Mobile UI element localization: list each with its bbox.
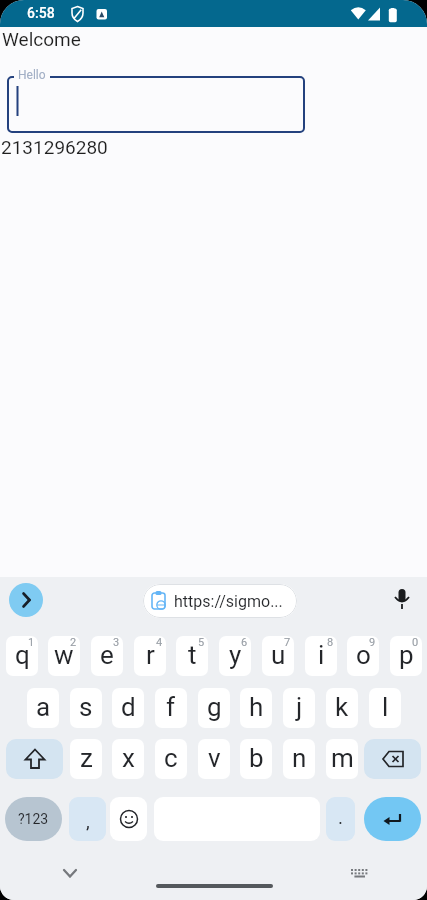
button[interactable]: j <box>283 688 315 728</box>
button[interactable]: k <box>326 688 358 728</box>
button[interactable]: f <box>155 688 187 728</box>
staticText: y <box>229 640 242 670</box>
button[interactable]: a <box>27 688 59 728</box>
staticText: o <box>356 640 371 670</box>
staticText: . <box>338 806 344 828</box>
staticText: 6 <box>241 636 248 649</box>
button[interactable]: m <box>326 739 358 779</box>
staticText: 8 <box>327 636 334 649</box>
button[interactable]: s <box>70 688 102 728</box>
button[interactable] <box>344 859 374 883</box>
staticText: 3 <box>113 636 120 649</box>
button[interactable]: y <box>219 636 251 676</box>
staticText: r <box>146 640 155 670</box>
button[interactable]: l <box>369 688 401 728</box>
staticText: c <box>164 743 178 773</box>
staticText: p <box>399 640 414 670</box>
staticText: n <box>292 743 307 773</box>
button[interactable] <box>56 859 84 883</box>
staticText: u <box>271 640 286 670</box>
button[interactable]: p <box>390 636 422 676</box>
button[interactable] <box>364 797 421 841</box>
button[interactable] <box>7 76 305 133</box>
button[interactable] <box>110 797 147 841</box>
button[interactable]: h <box>240 688 272 728</box>
staticText: e <box>100 640 114 670</box>
staticText: 4 <box>156 636 163 649</box>
staticText: x <box>122 743 135 773</box>
staticText: Welcome <box>2 28 81 50</box>
staticText: t <box>188 640 197 670</box>
button[interactable]: q <box>6 636 38 676</box>
button[interactable] <box>9 583 43 617</box>
staticText: 0 <box>412 636 419 649</box>
staticText: h <box>249 692 264 722</box>
staticText: j <box>296 692 303 722</box>
staticText: z <box>80 743 93 773</box>
staticText: 6:58 <box>27 5 55 21</box>
staticText: 9 <box>369 636 376 649</box>
staticText: b <box>249 743 264 773</box>
button[interactable]: x <box>112 739 144 779</box>
button[interactable]: , <box>69 797 106 841</box>
staticText: ?123 <box>18 811 49 827</box>
button[interactable]: n <box>283 739 315 779</box>
button[interactable]: i <box>305 636 337 676</box>
button[interactable]: o <box>347 636 379 676</box>
staticText: v <box>208 743 221 773</box>
staticText: 1 <box>28 636 35 649</box>
staticText: d <box>121 692 136 722</box>
staticText: 2131296280 <box>1 136 108 158</box>
staticText: f <box>166 692 176 722</box>
staticText: g <box>207 692 222 722</box>
staticText: Hello <box>18 68 46 82</box>
button[interactable] <box>364 739 421 779</box>
staticText: https://sigmo... <box>174 592 283 611</box>
button[interactable] <box>388 585 416 617</box>
button[interactable]: u <box>262 636 294 676</box>
staticText: 2 <box>70 636 77 649</box>
button[interactable]: e <box>91 636 123 676</box>
button[interactable]: ?123 <box>5 797 62 841</box>
button[interactable]: r <box>134 636 166 676</box>
button[interactable]: z <box>70 739 102 779</box>
staticText: s <box>79 692 93 722</box>
button[interactable]: b <box>240 739 272 779</box>
button[interactable]: v <box>198 739 230 779</box>
staticText: i <box>318 640 325 670</box>
button[interactable]: w <box>48 636 80 676</box>
staticText: , <box>86 810 90 832</box>
staticText: l <box>382 692 389 722</box>
staticText: m <box>331 743 354 773</box>
button[interactable]: t <box>176 636 208 676</box>
button[interactable]: d <box>112 688 144 728</box>
staticText: 7 <box>284 636 291 649</box>
staticText: 5 <box>198 636 205 649</box>
button[interactable] <box>6 739 63 779</box>
staticText: k <box>335 692 349 722</box>
staticText: w <box>54 640 74 670</box>
staticText: q <box>15 640 30 670</box>
button[interactable]: c <box>155 739 187 779</box>
staticText: a <box>36 692 51 722</box>
button[interactable]: https://sigmo... <box>143 584 297 618</box>
button[interactable]: g <box>198 688 230 728</box>
button[interactable]: . <box>326 797 355 841</box>
